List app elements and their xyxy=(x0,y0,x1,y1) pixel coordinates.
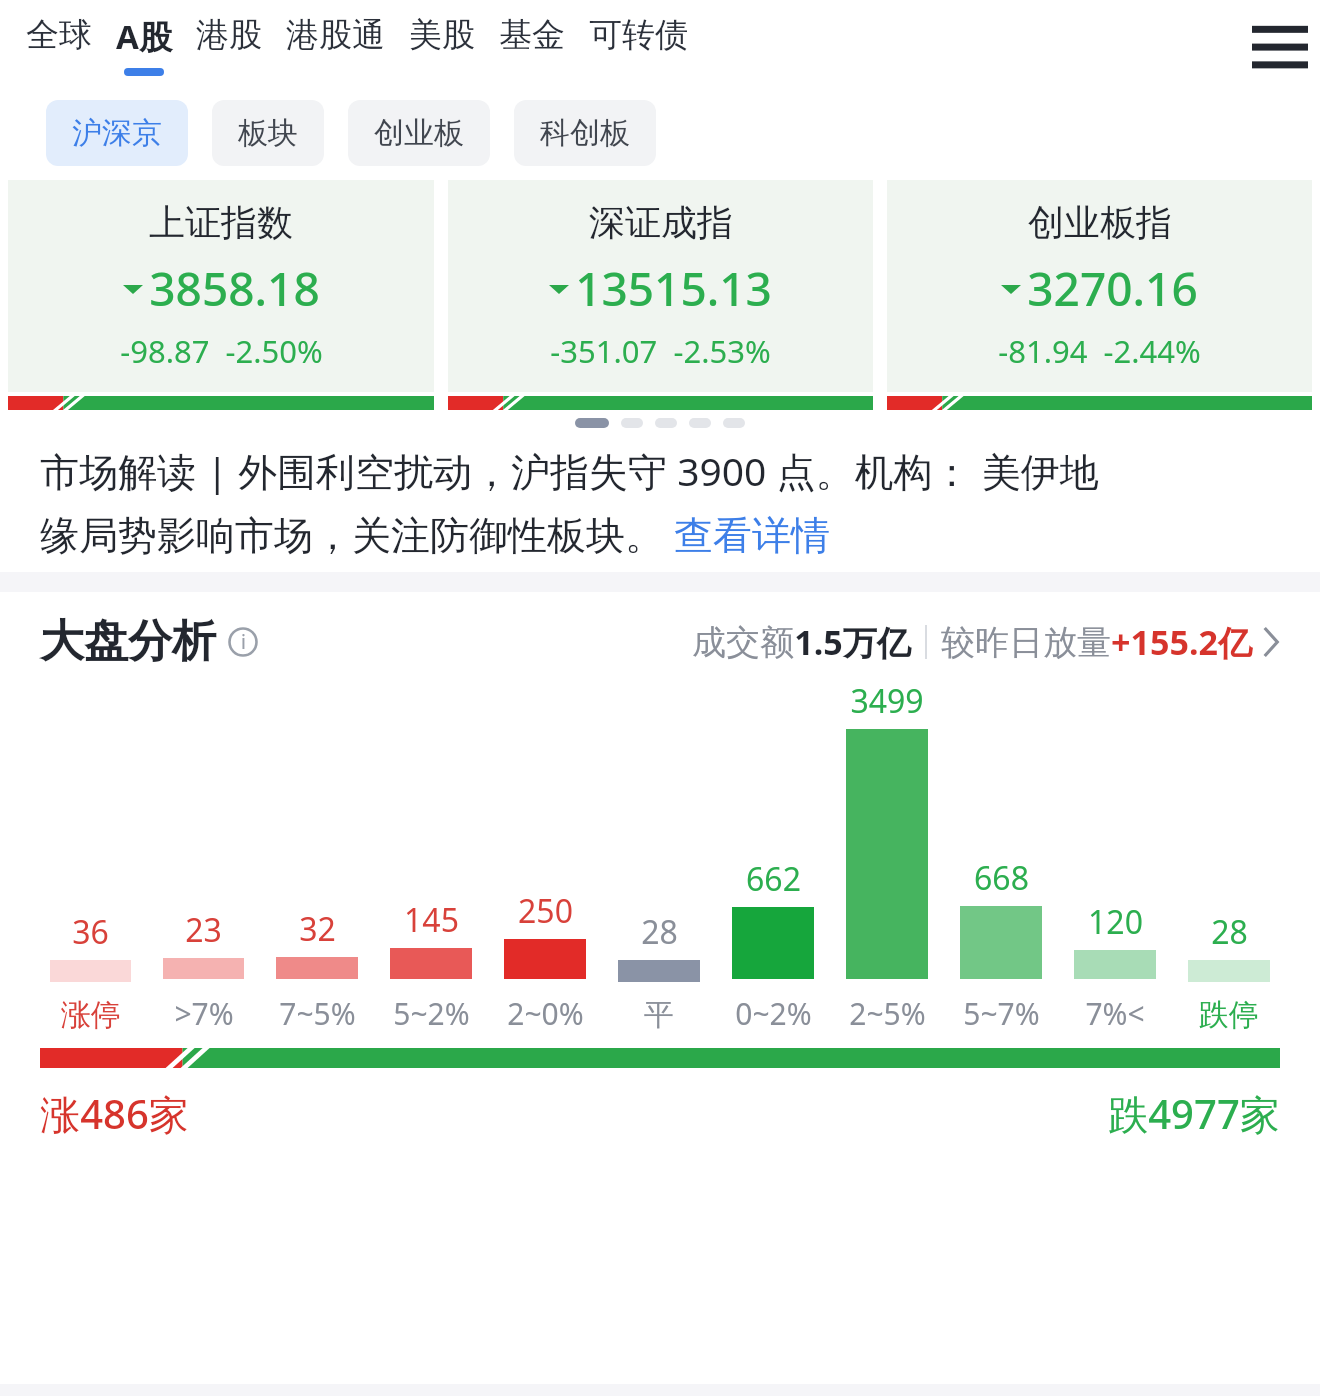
staticText: 大盘分析 xyxy=(40,614,216,669)
staticText: 板块 xyxy=(238,114,298,152)
staticText: 3270.16 xyxy=(1027,257,1198,320)
staticText: 5~7% xyxy=(963,993,1040,1034)
staticText: 250 xyxy=(518,889,573,933)
staticText: A股 xyxy=(116,14,172,59)
staticText: +155.2亿 xyxy=(1111,619,1252,665)
staticText: 3858.18 xyxy=(149,257,320,320)
staticText: 全球 xyxy=(26,14,92,56)
button[interactable]: 全球 xyxy=(16,0,102,65)
button[interactable]: 成交额 xyxy=(692,619,1280,665)
staticText: 145 xyxy=(404,898,459,942)
staticText: 港股通 xyxy=(286,14,385,56)
staticText: 28 xyxy=(1211,910,1248,954)
staticText: 36 xyxy=(72,910,109,954)
button[interactable]: 28 xyxy=(602,682,716,1034)
button[interactable]: 23 xyxy=(147,679,260,1034)
staticText: 查看详情 xyxy=(674,511,830,560)
button[interactable]: 250 xyxy=(488,679,602,1034)
staticText: 市场解读 | 外围利空扰动，沪指失守 3900 点。机构： 美伊地 xyxy=(40,444,1099,497)
staticText: >7% xyxy=(174,993,234,1034)
staticText: 深证成指 xyxy=(589,200,733,245)
staticText: 港股 xyxy=(196,14,262,56)
staticText: -81.94 -2.44% xyxy=(998,330,1201,372)
button[interactable]: 上证指数 xyxy=(8,180,434,410)
staticText: -98.87 -2.50% xyxy=(120,330,323,372)
staticText: 662 xyxy=(746,857,801,901)
staticText: 2~0% xyxy=(507,993,584,1034)
staticText: 可转债 xyxy=(589,14,688,56)
staticText: 120 xyxy=(1088,900,1143,944)
staticText: 23 xyxy=(185,908,222,952)
button[interactable]: 板块 xyxy=(212,100,324,166)
button[interactable]: 120 xyxy=(1058,679,1172,1034)
button[interactable]: 可转债 xyxy=(579,0,698,65)
staticText: 28 xyxy=(641,910,678,954)
staticText: 7%< xyxy=(1085,993,1145,1034)
staticText: 2~5% xyxy=(849,993,926,1034)
staticText: 涨486家 xyxy=(40,1086,189,1141)
staticText: 13515.13 xyxy=(575,257,772,320)
staticText: 跌停 xyxy=(1199,996,1259,1034)
button[interactable]: 科创板 xyxy=(514,100,656,166)
staticText: 668 xyxy=(974,856,1029,900)
staticText: 涨停 xyxy=(61,996,121,1034)
button[interactable]: 32 xyxy=(260,679,374,1034)
staticText: 3499 xyxy=(850,679,924,723)
button[interactable]: 美股 xyxy=(399,0,485,65)
button[interactable]: 3499 xyxy=(830,679,944,1034)
button[interactable]: Menu xyxy=(1250,16,1310,76)
button[interactable]: 662 xyxy=(716,679,830,1034)
staticText: 创业板 xyxy=(374,114,464,152)
button[interactable]: 668 xyxy=(944,679,1058,1034)
staticText: 0~2% xyxy=(735,993,812,1034)
staticText: 32 xyxy=(299,907,336,951)
button[interactable]: 创业板指 xyxy=(887,180,1312,410)
button[interactable]: 28 xyxy=(1172,682,1286,1034)
staticText: 较昨日放量 xyxy=(941,621,1111,664)
button[interactable]: 港股 xyxy=(186,0,272,65)
staticText: 科创板 xyxy=(540,114,630,152)
staticText: 上证指数 xyxy=(149,200,293,245)
staticText: 创业板指 xyxy=(1028,200,1172,245)
staticText: 5~2% xyxy=(393,993,470,1034)
staticText: 基金 xyxy=(499,14,565,56)
staticText: i xyxy=(241,629,246,655)
button[interactable]: 市场解读 | 外围利空扰动，沪指失守 3900 点。机构： 美伊地 xyxy=(0,444,1320,560)
staticText: 沪深京 xyxy=(72,114,162,152)
button[interactable]: 沪深京 xyxy=(46,100,188,166)
staticText: -351.07 -2.53% xyxy=(550,330,771,372)
button[interactable]: 港股通 xyxy=(276,0,395,65)
button[interactable]: 创业板 xyxy=(348,100,490,166)
staticText: 跌4977家 xyxy=(1108,1086,1280,1141)
button[interactable]: 基金 xyxy=(489,0,575,65)
staticText: 美股 xyxy=(409,14,475,56)
staticText: 平 xyxy=(644,996,674,1034)
button[interactable]: 36 xyxy=(34,682,147,1034)
button[interactable]: A股 xyxy=(106,0,182,76)
button[interactable]: 深证成指 xyxy=(448,180,873,410)
staticText: 缘局势影响市场，关注防御性板块。 xyxy=(40,511,664,560)
button[interactable]: Info xyxy=(228,627,258,657)
button[interactable]: 145 xyxy=(374,679,488,1034)
staticText: 1.5万亿 xyxy=(794,619,911,665)
staticText: 7~5% xyxy=(279,993,356,1034)
staticText: 成交额 xyxy=(692,621,794,664)
